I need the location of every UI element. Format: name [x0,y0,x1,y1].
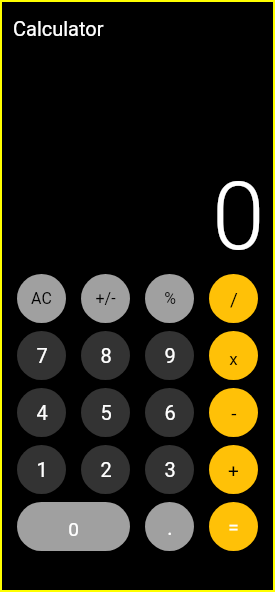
staticText: 2 [100,458,112,481]
button[interactable]: . [145,502,194,551]
staticText: 5 [100,401,112,424]
staticText: 7 [36,344,48,367]
button[interactable]: 2 [81,445,130,494]
staticText: +/- [95,289,116,308]
button[interactable]: % [145,274,194,323]
staticText: 0 [212,161,265,272]
button[interactable]: 5 [81,388,130,437]
button[interactable]: 6 [145,388,194,437]
staticText: x [229,349,238,369]
button[interactable]: 7 [17,331,66,380]
staticText: 3 [164,458,176,481]
staticText: 9 [164,344,176,367]
staticText: AC [31,289,52,308]
button[interactable]: AC [17,274,66,323]
button[interactable]: 9 [145,331,194,380]
button[interactable]: x [209,331,258,380]
staticText: % [164,289,176,308]
staticText: 0 [68,518,79,540]
button[interactable]: 8 [81,331,130,380]
staticText: 6 [164,401,176,424]
button[interactable]: / [209,274,258,323]
button[interactable]: + [209,445,258,494]
staticText: 8 [100,344,112,367]
button[interactable]: 4 [17,388,66,437]
button[interactable]: +/- [81,274,130,323]
staticText: 1 [36,458,48,481]
button[interactable]: 3 [145,445,194,494]
button[interactable]: 1 [17,445,66,494]
staticText: / [230,288,238,310]
button[interactable]: - [209,388,258,437]
staticText: Calculator [13,17,104,40]
staticText: - [231,402,237,424]
staticText: + [228,459,239,481]
button[interactable]: 0 [17,502,130,551]
staticText: . [167,516,173,539]
staticText: 4 [36,401,48,424]
button[interactable]: = [209,502,258,551]
staticText: = [228,516,239,538]
